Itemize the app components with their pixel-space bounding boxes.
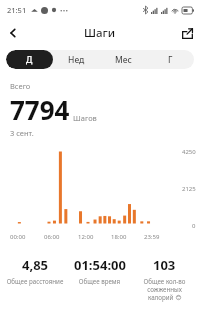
staticText: 12:00 (78, 233, 94, 241)
staticText: 00:00 (10, 233, 26, 241)
staticText: 21:51 (7, 5, 27, 15)
button[interactable]: Мес (100, 50, 147, 69)
staticText: Нед (68, 54, 85, 66)
staticText: 0 (192, 222, 196, 230)
staticText: 7794 (10, 92, 70, 127)
staticText: сожженных (134, 285, 195, 293)
button[interactable]: Г (147, 50, 194, 69)
button[interactable]: 01:54:00 (67, 256, 132, 285)
staticText: 4250 (182, 148, 196, 156)
staticText: 2125 (182, 185, 196, 193)
staticText: Общее расстояние (5, 277, 65, 285)
staticText: Общее время (69, 277, 130, 285)
button[interactable]: 103 (132, 256, 197, 301)
staticText: 103 (153, 256, 176, 274)
button[interactable]: Нед (53, 50, 100, 69)
button[interactable]: Д (6, 50, 53, 69)
staticText: Общее кол-во (134, 277, 195, 285)
staticText: 23:59 (144, 233, 160, 241)
staticText: 01:54:00 (74, 256, 126, 274)
staticText: 3 сент. (10, 128, 34, 138)
button[interactable]: 4,85 (3, 256, 67, 285)
staticText: Всего (10, 81, 31, 91)
button[interactable]: Поделиться (174, 20, 200, 46)
staticText: Г (168, 54, 173, 66)
staticText: 4,85 (22, 256, 49, 274)
button[interactable]: Назад (0, 20, 26, 46)
staticText: 06:00 (44, 233, 60, 241)
staticText: Д (26, 54, 33, 66)
staticText: 18:00 (111, 233, 127, 241)
staticText: Шагов (73, 113, 97, 123)
staticText: Мес (115, 54, 132, 66)
staticText: калорий (148, 293, 174, 301)
staticText: Шаги (84, 25, 116, 41)
